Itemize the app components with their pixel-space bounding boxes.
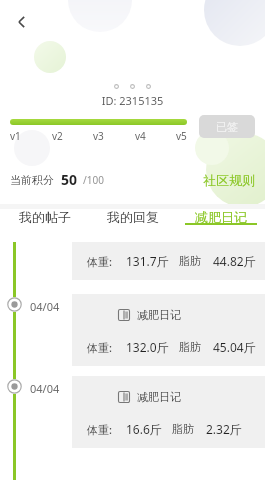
staticText: v5 xyxy=(176,129,187,143)
button[interactable]: 我的帖子 xyxy=(0,209,89,225)
staticText: 我的回复 xyxy=(107,209,159,225)
staticText: v1 xyxy=(10,129,21,143)
staticText: 体重: xyxy=(87,254,112,269)
button[interactable]: 我的回复 xyxy=(89,209,177,225)
button[interactable]: 社区规则 xyxy=(203,172,255,188)
staticText: 减肥日记 xyxy=(137,308,181,322)
staticText: 50 xyxy=(61,170,78,189)
staticText: 我的帖子 xyxy=(19,209,71,225)
staticText: 132.0斤 xyxy=(126,339,169,355)
staticText: 45.04斤 xyxy=(213,339,256,355)
staticText: 脂肪 xyxy=(179,254,201,268)
button[interactable]: 已签 xyxy=(199,115,255,138)
staticText: 脂肪 xyxy=(179,340,201,354)
button[interactable]: Back xyxy=(0,0,44,44)
staticText: /100 xyxy=(83,173,104,187)
button[interactable]: 减肥日记 xyxy=(72,294,265,366)
staticText: 社区规则 xyxy=(203,172,255,188)
staticText: 04/04 xyxy=(30,381,60,396)
staticText: 131.7斤 xyxy=(126,253,169,269)
staticText: 减肥日记 xyxy=(195,209,247,225)
staticText: 减肥日记 xyxy=(137,390,181,404)
staticText: v2 xyxy=(52,129,63,143)
button[interactable]: 减肥日记 xyxy=(177,209,265,225)
staticText: 04/04 xyxy=(30,299,60,314)
staticText: 2.32斤 xyxy=(206,421,242,437)
staticText: 体重: xyxy=(87,340,112,355)
button[interactable]: 减肥日记 xyxy=(72,376,265,448)
staticText: ID: 2315135 xyxy=(0,93,265,108)
staticText: 当前积分 xyxy=(10,173,54,187)
staticText: 16.6斤 xyxy=(126,421,162,437)
staticText: 体重: xyxy=(87,422,112,437)
staticText: v4 xyxy=(135,129,146,143)
staticText: 脂肪 xyxy=(172,422,194,436)
staticText: v3 xyxy=(93,129,104,143)
staticText: 44.82斤 xyxy=(213,253,256,269)
staticText: 已签 xyxy=(216,120,238,134)
